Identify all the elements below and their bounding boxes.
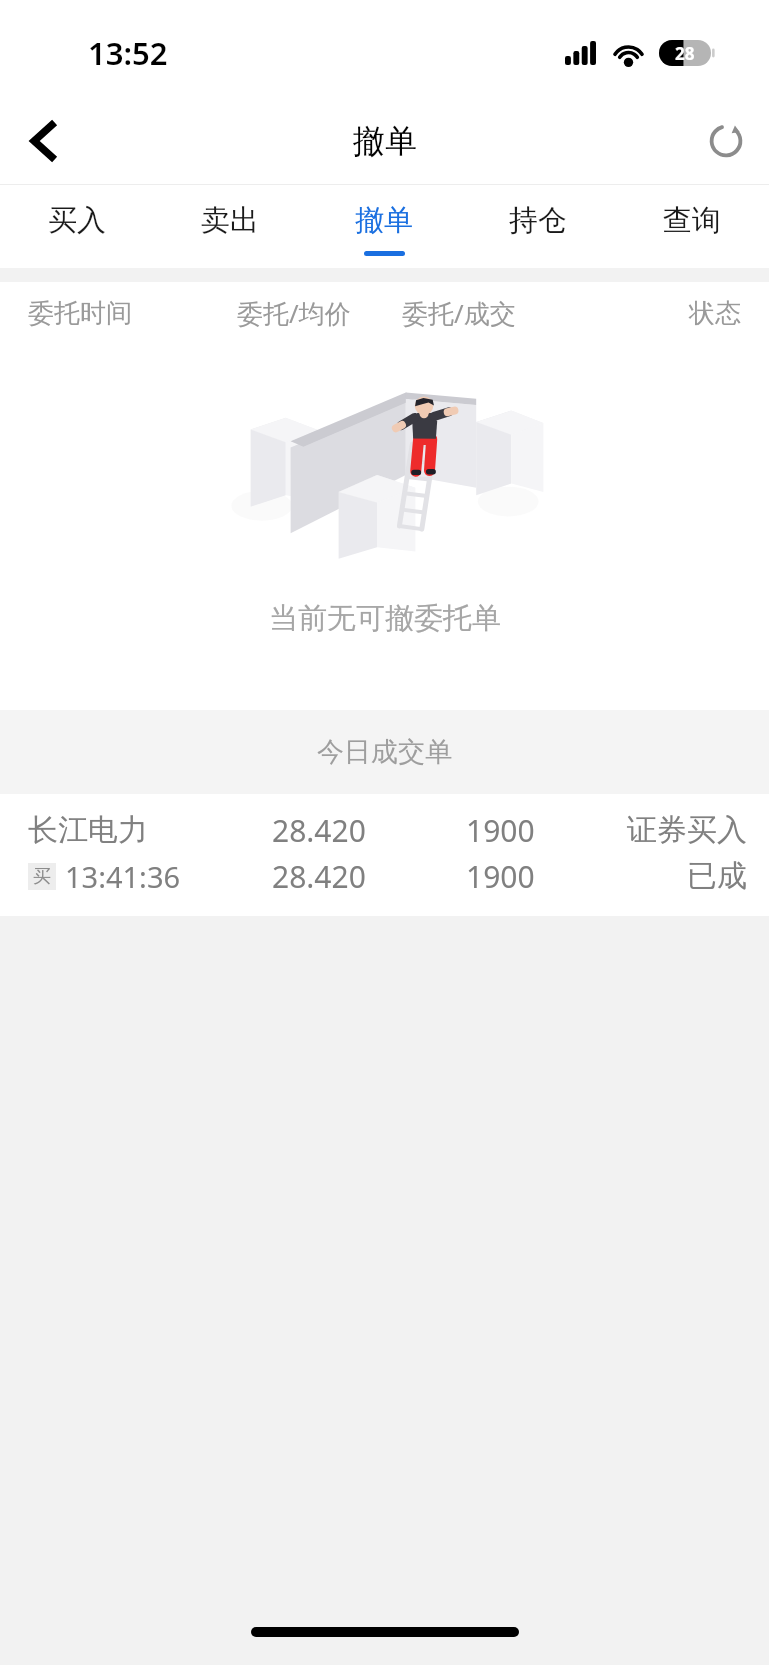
staticText: 买 xyxy=(33,865,51,888)
button[interactable]: 买入 xyxy=(0,185,153,268)
staticText: 13:41:36 xyxy=(65,857,181,896)
staticText: 13:52 xyxy=(88,32,168,74)
button[interactable]: 查询 xyxy=(615,185,769,268)
button[interactable]: 持仓 xyxy=(461,185,615,268)
button[interactable]: Refresh xyxy=(683,98,769,184)
staticText: 28.420 xyxy=(272,856,366,897)
staticText: 当前无可撤委托单 xyxy=(269,600,501,637)
staticText: 查询 xyxy=(663,202,721,239)
staticText: 撤单 xyxy=(355,202,413,239)
staticText: 28 xyxy=(675,42,695,65)
staticText: 今日成交单 xyxy=(317,735,452,769)
staticText: 委托/均价 xyxy=(237,295,351,331)
button[interactable]: 卖出 xyxy=(153,185,307,268)
staticText: 持仓 xyxy=(509,202,567,239)
staticText: 1900 xyxy=(466,856,535,897)
staticText: 证券买入 xyxy=(627,811,747,849)
staticText: 买入 xyxy=(48,202,106,239)
staticText: 28.420 xyxy=(272,810,366,851)
staticText: 状态 xyxy=(689,297,741,330)
button[interactable]: 撤单 xyxy=(307,185,461,268)
staticText: 委托/成交 xyxy=(402,295,516,331)
staticText: 已成 xyxy=(687,857,747,895)
button[interactable]: Back xyxy=(0,98,86,184)
staticText: 长江电力 xyxy=(28,811,148,849)
staticText: 1900 xyxy=(466,810,535,851)
button[interactable]: 长江电力 xyxy=(0,794,769,916)
staticText: 卖出 xyxy=(201,202,259,239)
staticText: 撤单 xyxy=(353,121,417,161)
staticText: 委托时间 xyxy=(28,297,132,330)
